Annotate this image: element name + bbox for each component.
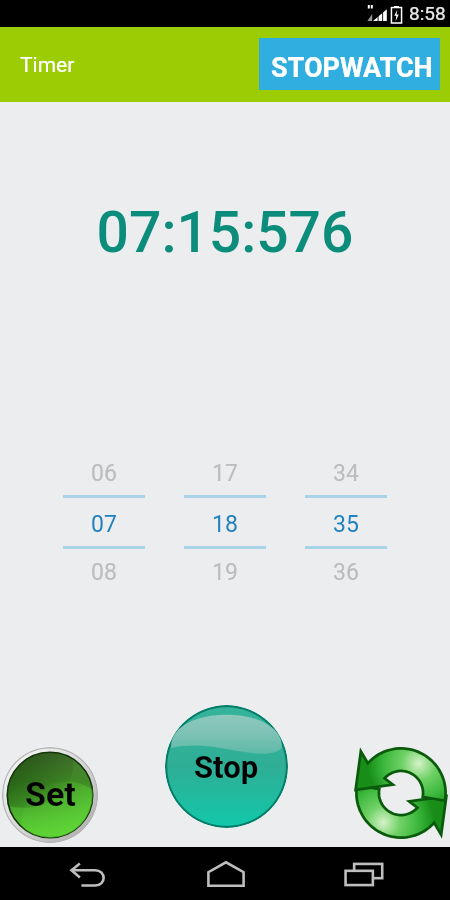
button[interactable]: Home — [198, 847, 253, 900]
button[interactable]: 06 — [63, 454, 145, 584]
staticText: 06 — [63, 460, 145, 487]
button[interactable]: STOPWATCH — [259, 38, 440, 90]
button[interactable]: Back — [61, 848, 116, 900]
button[interactable]: Stop — [165, 705, 288, 828]
staticText: Stop — [194, 749, 259, 785]
staticText: Timer — [20, 53, 75, 78]
button[interactable]: Set — [2, 747, 98, 843]
staticText: 8:58 — [409, 2, 446, 24]
staticText: 36 — [305, 559, 387, 586]
staticText: 07:15:576 — [0, 199, 450, 266]
staticText: 18 — [184, 511, 266, 538]
staticText: Set — [25, 774, 76, 814]
staticText: 07 — [63, 511, 145, 538]
staticText: 35 — [305, 511, 387, 538]
staticText: 19 — [184, 559, 266, 586]
button[interactable]: Reset — [352, 744, 450, 842]
staticText: 34 — [305, 460, 387, 487]
staticText: 17 — [184, 460, 266, 487]
staticText: STOPWATCH — [271, 52, 433, 84]
button[interactable]: 34 — [305, 454, 387, 584]
staticText: 08 — [63, 559, 145, 586]
button[interactable]: 17 — [184, 454, 266, 584]
button[interactable]: Recents — [336, 848, 391, 900]
